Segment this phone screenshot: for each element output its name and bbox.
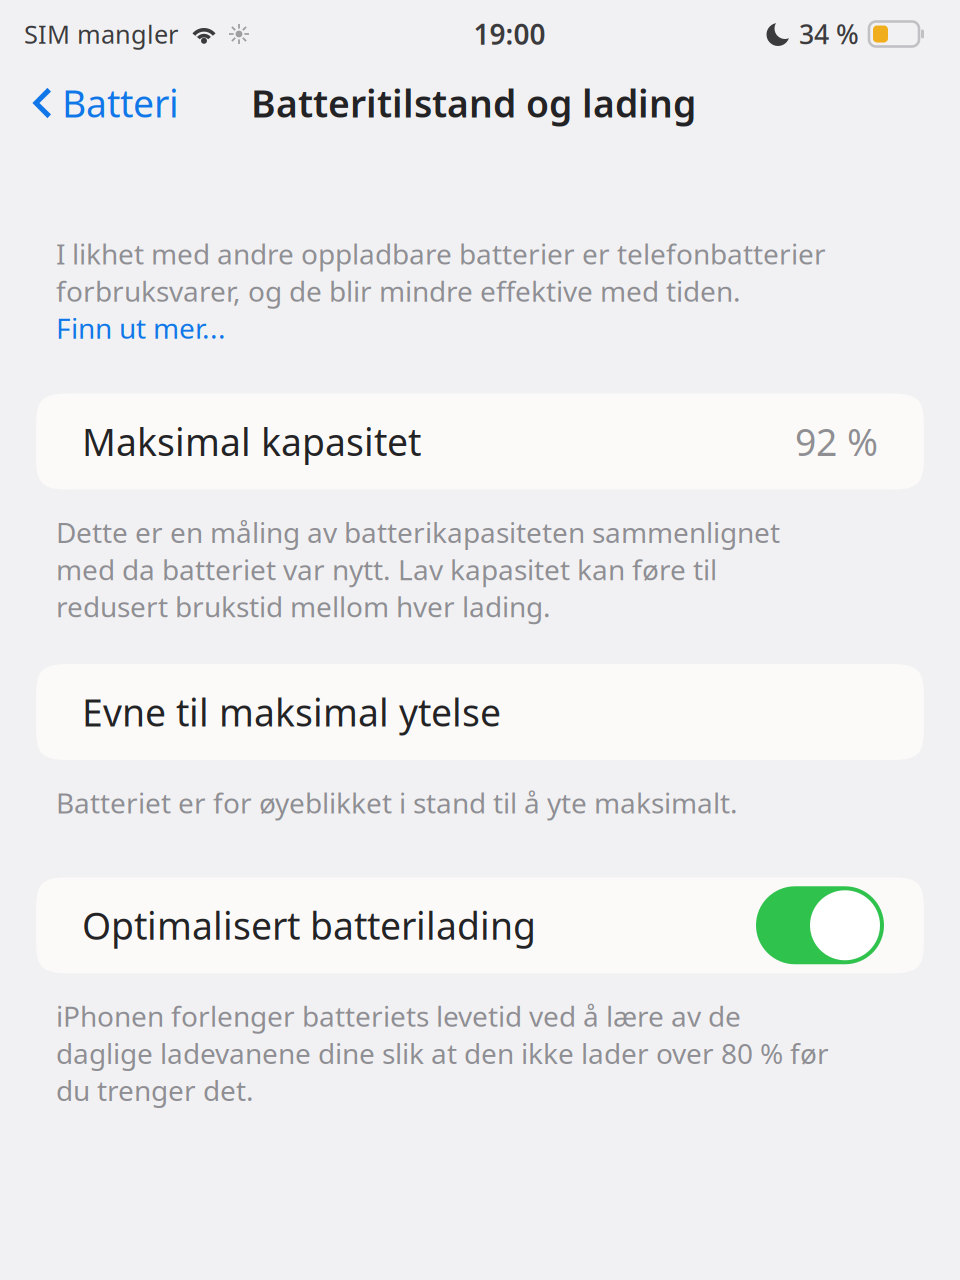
staticText: Evne til maksimal ytelse — [82, 687, 501, 737]
button[interactable]: Optimalisert batterilading — [0, 877, 960, 973]
staticText: Finn ut mer... — [56, 309, 226, 347]
staticText: Dette er en måling av batterikapasiteten… — [56, 513, 780, 625]
staticText: Maksimal kapasitet — [82, 417, 421, 466]
staticText: Optimalisert batterilading — [82, 900, 536, 950]
button[interactable]: Finn ut mer... — [56, 309, 830, 347]
button[interactable]: Batteri — [0, 68, 195, 138]
staticText: 34 % — [799, 16, 859, 52]
staticText: iPhonen forlenger batteriets levetid ved… — [56, 997, 829, 1109]
staticText: Batteriet er for øyeblikket i stand til … — [56, 784, 738, 821]
staticText: Batteri — [62, 78, 179, 128]
staticText: I likhet med andre oppladbare batterier … — [56, 235, 826, 309]
staticText: Batteritilstand og lading — [251, 78, 696, 128]
staticText: 92 % — [795, 417, 878, 466]
staticText: SIM mangler — [24, 17, 178, 51]
button[interactable]: Evne til maksimal ytelse — [0, 664, 960, 760]
staticText: 19:00 — [473, 15, 545, 53]
